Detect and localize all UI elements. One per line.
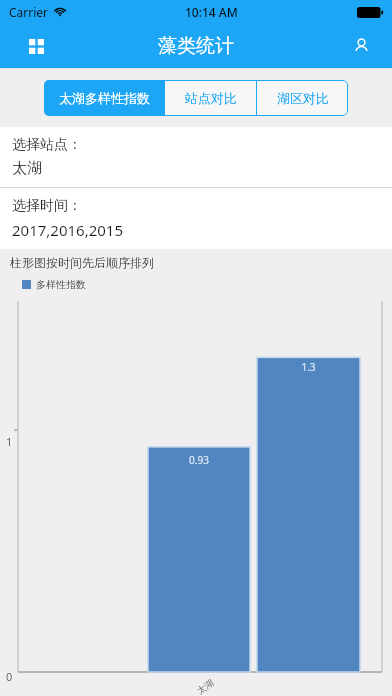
staticText: 太湖 xyxy=(194,677,216,696)
staticText: 选择时间： xyxy=(12,197,82,215)
staticText: 站点对比 xyxy=(185,90,237,106)
staticText: 0.93 xyxy=(189,453,209,467)
staticText: 选择站点： xyxy=(12,136,82,154)
button[interactable]: 2017,2016,2015 xyxy=(0,220,392,249)
button[interactable]: 湖区对比 xyxy=(257,80,348,116)
staticText: 多样性指数 xyxy=(36,278,86,291)
button[interactable]: Menu xyxy=(18,28,54,64)
button[interactable]: 太湖多样性指数 xyxy=(44,80,164,116)
staticText: 湖区对比 xyxy=(277,90,329,106)
staticText: Carrier xyxy=(9,4,49,20)
staticText: 藻类统计 xyxy=(158,34,234,58)
staticText: 1 xyxy=(6,434,13,449)
button[interactable]: 站点对比 xyxy=(165,80,256,116)
staticText: 1.3 xyxy=(301,360,316,374)
staticText: 太湖 xyxy=(12,159,42,178)
staticText: 10:14 AM xyxy=(185,4,238,20)
staticText: 0 xyxy=(6,669,13,684)
staticText: 2017,2016,2015 xyxy=(12,220,124,240)
button[interactable]: Account xyxy=(343,28,379,64)
staticText: 柱形图按时间先后顺序排列 xyxy=(10,255,154,270)
staticText: 太湖多样性指数 xyxy=(59,90,150,106)
button[interactable]: 太湖 xyxy=(0,159,392,187)
